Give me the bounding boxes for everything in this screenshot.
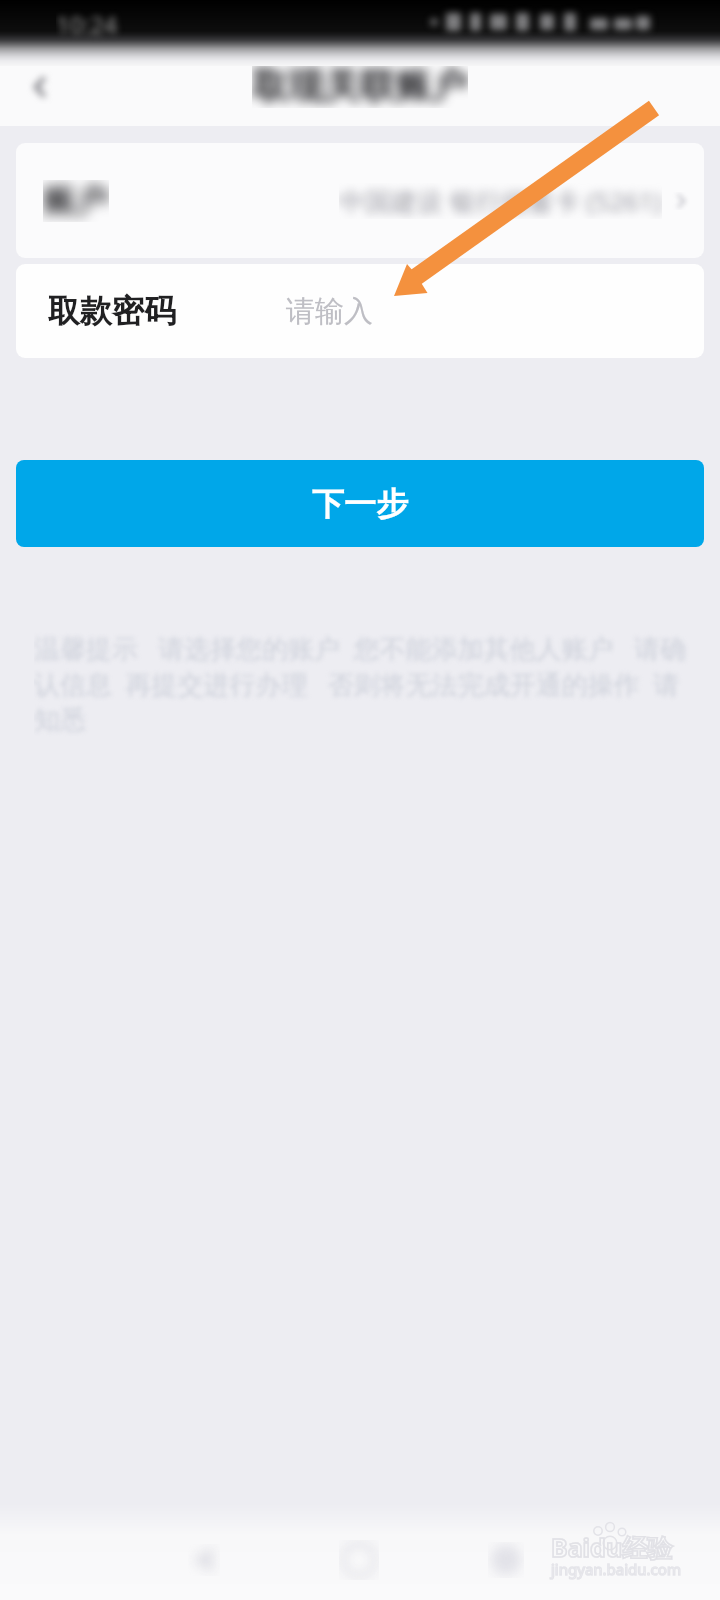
button[interactable]: 账户 (16, 143, 704, 258)
staticText: 账户 (43, 180, 109, 222)
button[interactable]: 取款密码 (16, 264, 704, 358)
button[interactable]: Back (174, 1530, 234, 1590)
staticText: 中国建设 银行储蓄卡 (5261) (339, 183, 662, 219)
button[interactable]: Home (329, 1530, 389, 1590)
staticText: 取款密码 (48, 291, 176, 331)
staticText: 请输入 (286, 293, 373, 330)
staticText: 下一步 (312, 484, 408, 524)
staticText: Baidu经验 (551, 1530, 673, 1564)
staticText: 10:24 (56, 8, 118, 41)
staticText: 取现关联账户 (252, 63, 468, 108)
staticText: 温馨提示 请选择您的账户 您不能添加其他人账户 请确认信息 再提交进行办理 否则… (34, 630, 696, 737)
button[interactable]: Back (12, 59, 68, 115)
button[interactable]: 下一步 (16, 460, 704, 547)
staticText: jingyan.baidu.com (551, 1559, 681, 1579)
button[interactable]: Recent apps (476, 1530, 536, 1590)
